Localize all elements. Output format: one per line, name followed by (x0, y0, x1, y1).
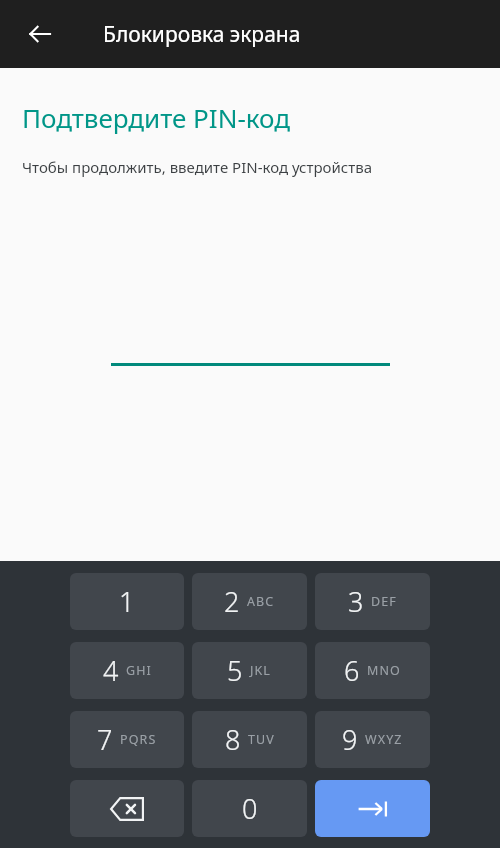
staticText: 1 (119, 583, 135, 620)
button[interactable]: 3 (315, 573, 430, 630)
staticText: WXYZ (365, 731, 403, 748)
staticText: GHI (126, 662, 152, 679)
button[interactable]: Enter (315, 780, 430, 837)
staticText: 9 (342, 721, 358, 758)
staticText: DEF (371, 593, 397, 610)
staticText: ABC (247, 593, 275, 610)
button[interactable]: 9 (315, 711, 430, 768)
staticText: Подтвердите PIN-код (22, 100, 291, 135)
staticText: TUV (248, 731, 275, 748)
button[interactable]: 7 (70, 711, 184, 768)
button[interactable]: 2 (192, 573, 307, 630)
staticText: 6 (344, 652, 360, 689)
button[interactable]: 5 (192, 642, 307, 699)
staticText: 0 (242, 790, 258, 827)
staticText: MNO (367, 662, 401, 679)
staticText: JKL (250, 662, 272, 679)
button[interactable]: Backspace (70, 780, 184, 837)
staticText: 4 (103, 652, 119, 689)
button[interactable]: 6 (315, 642, 430, 699)
staticText: Блокировка экрана (103, 20, 301, 49)
staticText: Чтобы продолжить, введите PIN-код устрой… (22, 157, 372, 177)
staticText: 3 (348, 583, 364, 620)
button[interactable]: Back (16, 10, 64, 58)
staticText: 8 (225, 721, 241, 758)
staticText: 2 (224, 583, 240, 620)
button[interactable]: 4 (70, 642, 184, 699)
staticText: PQRS (120, 731, 157, 748)
button[interactable]: 1 (70, 573, 184, 630)
staticText: 7 (97, 721, 113, 758)
button[interactable]: 0 (192, 780, 307, 837)
button[interactable]: 8 (192, 711, 307, 768)
staticText: 5 (227, 652, 243, 689)
